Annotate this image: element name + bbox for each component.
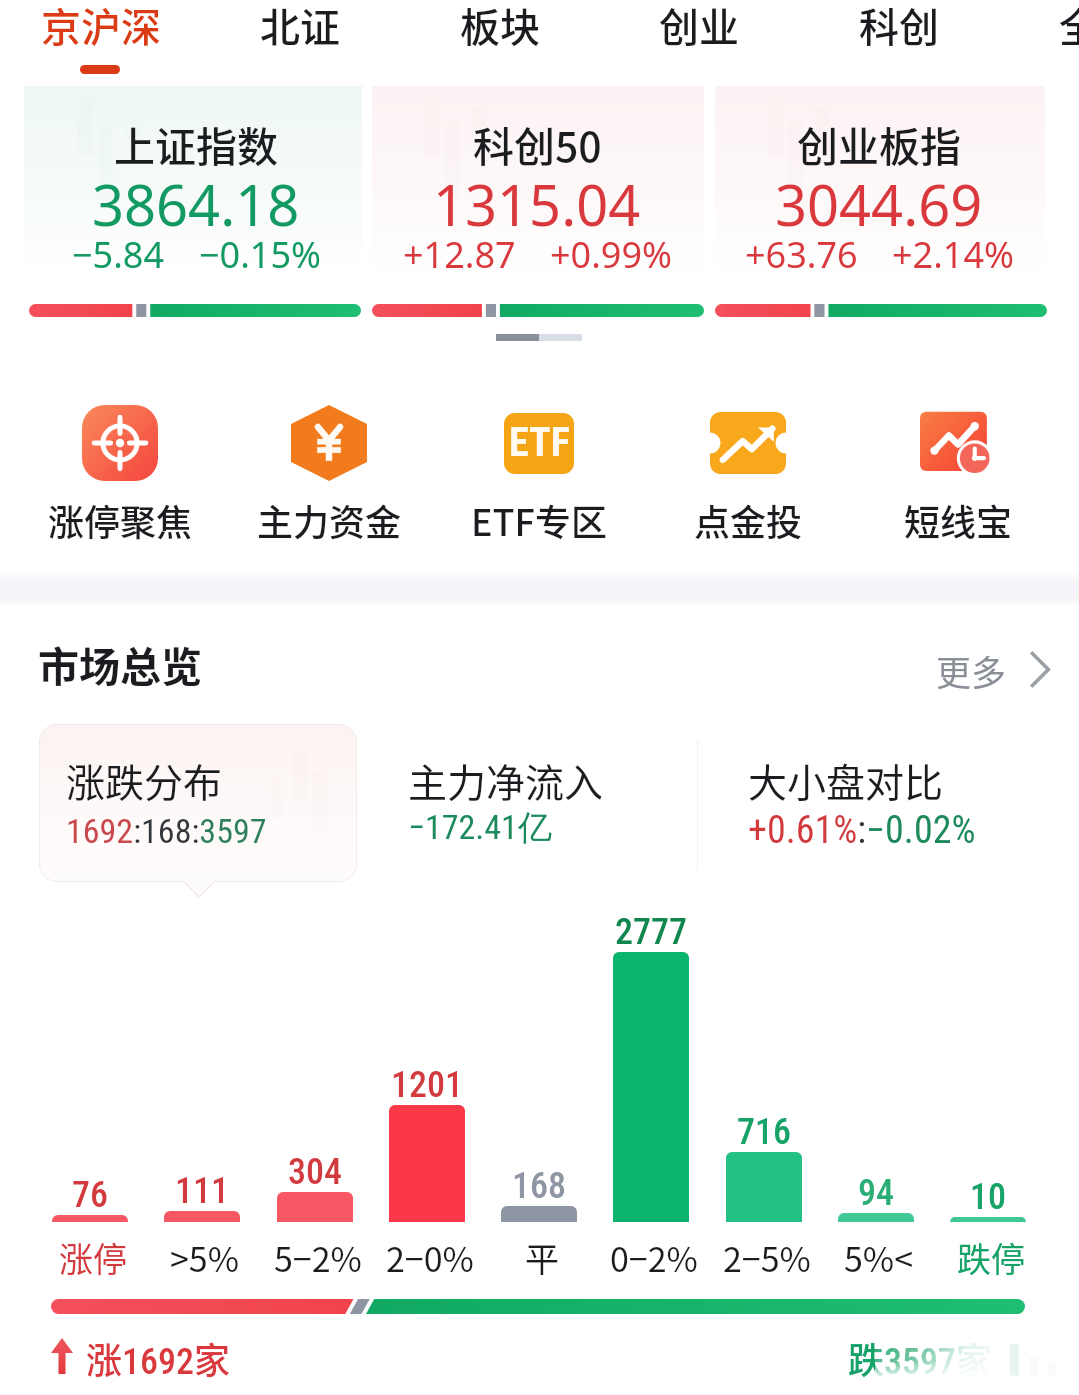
staticText: 点金投 [694,494,803,546]
staticText: 2777 [615,911,687,953]
button[interactable]: 板块 [400,0,600,80]
staticText: 更多 [936,645,1007,693]
button[interactable]: 跌3597家 [848,1332,993,1384]
button[interactable] [708,940,820,1270]
button[interactable]: 科创 [799,0,999,80]
button[interactable] [146,940,258,1270]
other: 主力资金 [291,405,367,481]
staticText: −172.41亿 [408,806,552,849]
staticText: 平 [525,1233,559,1282]
staticText: 北证 [260,0,340,54]
button[interactable] [259,940,371,1270]
button[interactable]: 主力资金 [225,395,433,550]
staticText: 1201 [391,1064,463,1106]
staticText: 3864.18 [92,166,300,242]
staticText: >5% [170,1233,240,1282]
staticText: +2.14% [892,230,1014,279]
button[interactable] [595,940,707,1270]
button[interactable]: 京沪深 [1,0,201,80]
staticText: +0.61%:−0.02% [748,808,976,853]
button[interactable] [932,940,1044,1270]
button[interactable] [749,724,1039,882]
button[interactable] [372,86,704,286]
button[interactable]: 涨停聚焦 [16,395,224,550]
button[interactable]: 点金投 [644,395,852,550]
button[interactable] [371,940,483,1270]
staticText: 5−2% [274,1233,362,1282]
button[interactable]: 全部 [999,0,1079,80]
staticText: 168 [512,1165,566,1207]
button[interactable]: 创业 [599,0,799,80]
staticText: 304 [288,1151,342,1193]
staticText: 涨跌分布 [66,752,223,808]
staticText: +0.99% [550,230,672,279]
staticText: 2−0% [386,1233,474,1282]
staticText: 10 [970,1176,1006,1218]
button[interactable]: 北证 [200,0,400,80]
staticText: 涨1692家 [86,1332,231,1384]
staticText: 大小盘对比 [748,752,944,808]
staticText: 跌3597家 [848,1332,993,1384]
staticText: 716 [737,1111,791,1153]
staticText: 主力净流入 [408,752,604,808]
staticText: 1315.04 [433,166,641,242]
other: 点金投 [710,405,786,481]
other: 涨停聚焦 [82,405,158,481]
staticText: 短线宝 [904,494,1013,546]
staticText: 主力资金 [257,494,402,546]
button[interactable]: ETF专区 [435,395,643,550]
button[interactable]: 短线宝 [854,395,1062,550]
other: ETF专区 [501,405,577,481]
staticText: 全部 [1059,0,1079,54]
staticText: 涨停 [59,1233,127,1282]
staticText: 76 [72,1174,108,1216]
staticText: 1692:168:3597 [66,811,267,851]
other: 短线宝 [920,405,996,481]
staticText: ETF专区 [471,494,607,546]
staticText: 科创50 [473,114,602,173]
button[interactable] [34,940,146,1270]
staticText: 3044.69 [775,166,983,242]
button[interactable] [483,940,595,1270]
staticText: 111 [175,1170,229,1212]
staticText: +63.76 [745,230,858,279]
staticText: 2−5% [723,1233,811,1282]
button[interactable] [24,86,362,286]
button[interactable]: 更多 [936,645,1050,693]
staticText: 上证指数 [114,114,278,173]
button[interactable] [715,86,1045,286]
staticText: 涨停聚焦 [48,494,193,546]
button[interactable]: 涨1692家 [86,1332,231,1384]
staticText: 0−2% [610,1233,698,1282]
button[interactable] [409,724,689,882]
staticText: 94 [858,1172,894,1214]
staticText: ETF [509,419,570,466]
staticText: −0.15% [199,230,321,279]
staticText: 科创 [859,0,939,54]
button[interactable] [39,724,357,882]
staticText: +12.87 [403,230,516,279]
staticText: 市场总览 [38,634,202,693]
button[interactable] [820,940,932,1270]
staticText: 京沪深 [41,0,161,54]
staticText: 板块 [460,0,540,54]
staticText: 创业 [659,0,739,54]
staticText: 创业板指 [797,114,961,173]
staticText: −5.84 [72,230,165,279]
staticText: 跌停 [957,1233,1025,1282]
staticText: 5%< [844,1233,914,1282]
